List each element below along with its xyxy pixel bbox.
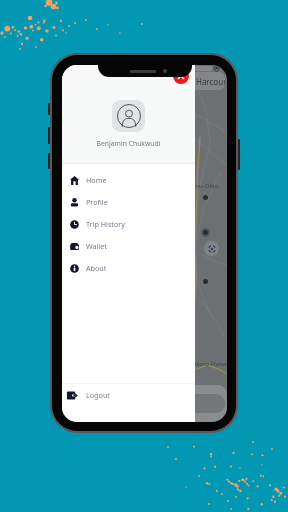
- button[interactable]: About: [62, 257, 195, 279]
- button[interactable]: Trip History: [62, 213, 195, 235]
- button[interactable]: Search location: [100, 72, 225, 90]
- staticText: Rumuokoro Flyover: [176, 360, 227, 368]
- button[interactable]: My location: [204, 241, 219, 256]
- button[interactable]: Profile: [62, 191, 195, 213]
- staticText: Home: [86, 175, 107, 185]
- staticText: Wallet: [86, 241, 107, 251]
- button[interactable]: Close drawer: [173, 68, 189, 84]
- staticText: Logout: [86, 390, 110, 400]
- staticText: Benjamin Chukwudi: [62, 139, 195, 148]
- staticText: Rumu-Obio: [186, 182, 219, 190]
- button[interactable]: Logout: [62, 384, 195, 406]
- staticText: Port Harcourt: [178, 76, 225, 87]
- button[interactable]: Home: [62, 169, 195, 191]
- button[interactable]: Wallet: [62, 235, 195, 257]
- staticText: Profile: [86, 197, 108, 207]
- staticText: Trip History: [86, 219, 125, 229]
- staticText: About: [86, 263, 107, 273]
